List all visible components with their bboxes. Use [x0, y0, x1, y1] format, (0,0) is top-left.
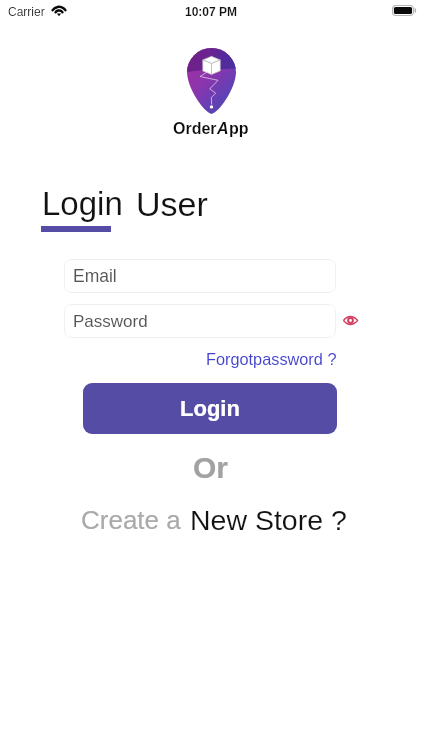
staticText: Password: [73, 312, 148, 331]
button[interactable]: New Store ?: [190, 504, 347, 536]
staticText: New Store ?: [190, 504, 347, 536]
staticText: Carrier: [8, 5, 45, 18]
staticText: Create a: [81, 505, 188, 534]
staticText: pp: [229, 120, 249, 138]
staticText: Or: [193, 451, 229, 485]
button[interactable]: Login: [42, 185, 123, 222]
staticText: Login: [42, 185, 123, 222]
staticText: Login: [180, 396, 240, 421]
button[interactable]: Email: [64, 259, 336, 293]
staticText: Email: [73, 266, 117, 286]
staticText: Forgotpassword ?: [206, 350, 337, 368]
button[interactable]: User: [136, 185, 208, 223]
staticText: A: [217, 120, 229, 138]
button[interactable]: Password: [64, 304, 336, 338]
button[interactable]: Show password: [339, 309, 361, 331]
button[interactable]: Login: [83, 383, 337, 434]
staticText: Order: [173, 120, 217, 138]
staticText: User: [136, 185, 208, 223]
button[interactable]: Forgotpassword ?: [206, 350, 337, 368]
staticText: 10:07 PM: [185, 5, 238, 18]
